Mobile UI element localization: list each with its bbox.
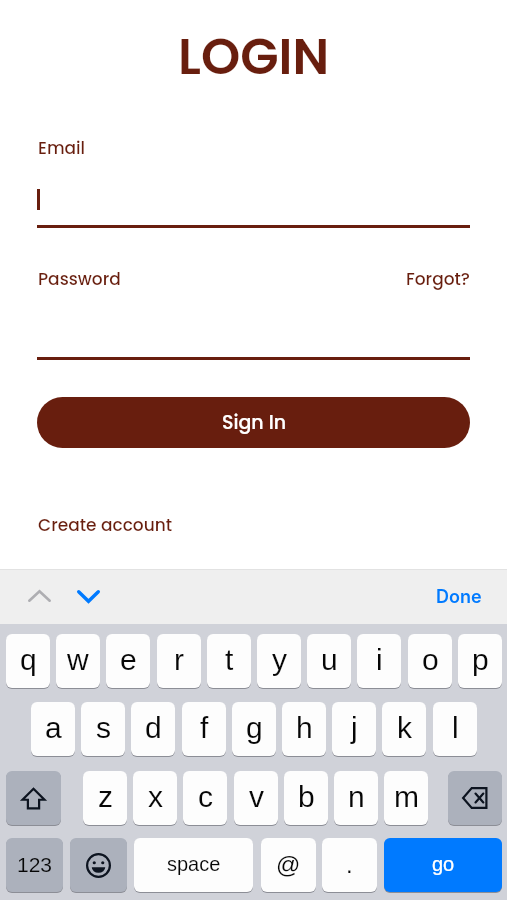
button[interactable]: b [284, 771, 328, 825]
button[interactable]: g [232, 702, 276, 756]
staticText: l [452, 711, 459, 745]
button[interactable]: w [56, 634, 100, 688]
staticText: h [296, 711, 313, 745]
staticText: Forgot? [406, 267, 470, 291]
button[interactable]: . [322, 838, 377, 892]
button[interactable]: space [134, 838, 253, 892]
button[interactable]: Create account [36, 511, 175, 539]
staticText: n [348, 780, 365, 814]
button[interactable]: o [408, 634, 452, 688]
button[interactable]: p [458, 634, 502, 688]
staticText: Done [436, 586, 482, 608]
button[interactable]: go [384, 838, 502, 892]
button[interactable]: Shift [6, 771, 61, 825]
button[interactable]: f [182, 702, 226, 756]
staticText: i [376, 643, 383, 677]
staticText: e [120, 643, 137, 677]
staticText: j [351, 711, 358, 745]
button[interactable]: Next field [69, 578, 107, 614]
button[interactable]: q [6, 634, 50, 688]
button[interactable]: z [83, 771, 127, 825]
button[interactable]: j [332, 702, 376, 756]
staticText: a [45, 711, 62, 745]
staticText: v [249, 780, 264, 814]
staticText: p [472, 643, 489, 677]
staticText: o [422, 643, 439, 677]
staticText: . [346, 851, 353, 878]
button[interactable]: s [81, 702, 125, 756]
staticText: t [225, 643, 234, 677]
staticText: s [96, 711, 111, 745]
staticText: @ [276, 851, 301, 878]
staticText: k [397, 711, 412, 745]
staticText: f [200, 711, 209, 745]
button[interactable]: Forgot? [404, 265, 472, 293]
button[interactable]: Sign In [37, 397, 470, 448]
staticText: z [98, 780, 113, 814]
button[interactable]: Done [432, 582, 486, 612]
button[interactable]: r [157, 634, 201, 688]
button[interactable]: m [384, 771, 428, 825]
button[interactable]: k [382, 702, 426, 756]
staticText: g [246, 711, 263, 745]
button[interactable]: u [307, 634, 351, 688]
button[interactable]: e [106, 634, 150, 688]
staticText: d [145, 711, 162, 745]
staticText: c [198, 780, 213, 814]
staticText: LOGIN [178, 22, 330, 92]
button[interactable]: v [234, 771, 278, 825]
staticText: w [67, 643, 89, 677]
button[interactable]: @ [261, 838, 316, 892]
button[interactable]: 123 [6, 838, 63, 892]
staticText: Password [38, 267, 121, 291]
button[interactable]: l [433, 702, 477, 756]
button[interactable]: Previous field [20, 578, 58, 614]
staticText: r [174, 643, 184, 677]
staticText: Create account [38, 513, 173, 537]
button[interactable]: d [131, 702, 175, 756]
button[interactable]: c [183, 771, 227, 825]
button[interactable]: x [133, 771, 177, 825]
button[interactable]: a [31, 702, 75, 756]
button[interactable]: h [282, 702, 326, 756]
staticText: m [394, 780, 419, 814]
button[interactable]: n [334, 771, 378, 825]
staticText: y [272, 643, 287, 677]
staticText: 123 [17, 853, 53, 876]
button[interactable]: i [357, 634, 401, 688]
button[interactable]: y [257, 634, 301, 688]
staticText: x [148, 780, 163, 814]
staticText: Sign In [222, 409, 286, 436]
button[interactable]: Emoji [70, 838, 127, 892]
staticText: b [298, 780, 315, 814]
staticText: u [321, 643, 338, 677]
staticText: Email [38, 136, 86, 160]
staticText: q [20, 643, 37, 677]
staticText: space [167, 853, 221, 875]
button[interactable]: t [207, 634, 251, 688]
button[interactable]: Backspace [448, 771, 502, 825]
staticText: go [432, 853, 455, 875]
